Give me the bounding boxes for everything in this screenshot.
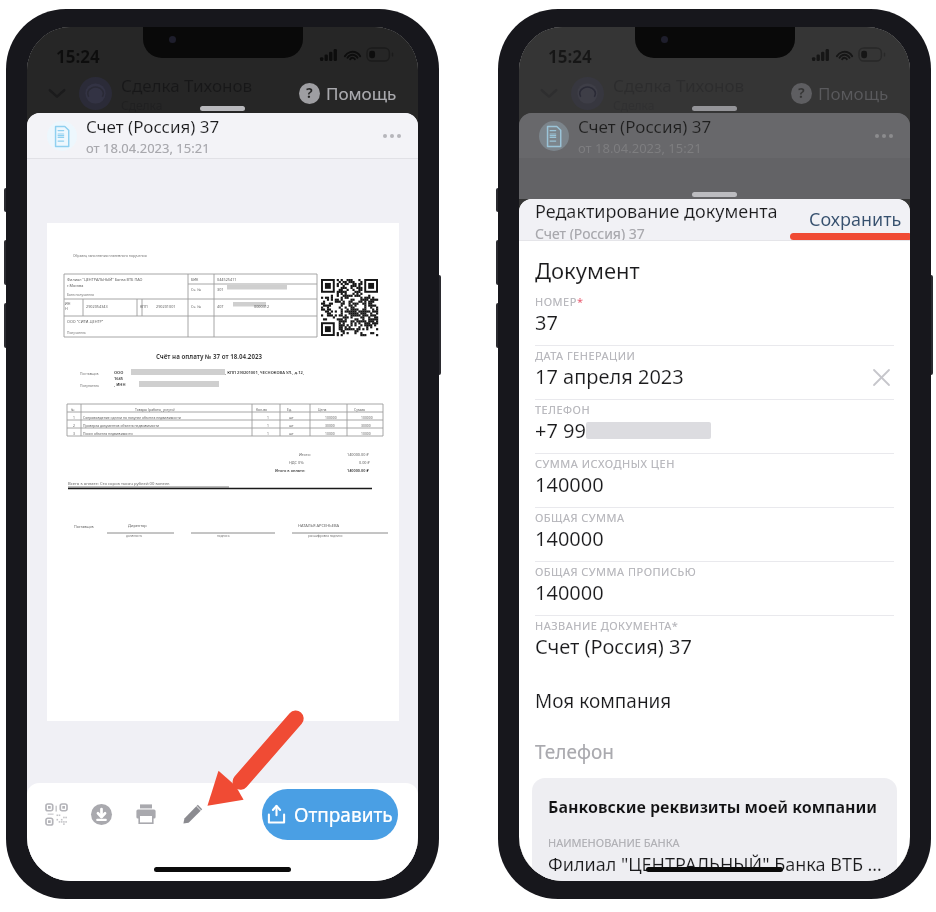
staticText: 37 bbox=[535, 309, 558, 336]
staticText: должность bbox=[126, 534, 143, 538]
button[interactable]: ОБЩАЯ СУММА ПРОПИСЬЮ bbox=[535, 562, 894, 616]
button[interactable]: Сохранить bbox=[799, 201, 910, 238]
staticText: г.Москва bbox=[67, 283, 84, 288]
staticText: , ИНН bbox=[114, 382, 126, 387]
staticText: Образец заполнения платежного поручения bbox=[73, 253, 147, 258]
staticText: Документ bbox=[535, 255, 640, 285]
staticText: КПП bbox=[140, 304, 148, 309]
staticText: 3 bbox=[73, 431, 75, 436]
staticText: Директор bbox=[128, 523, 147, 528]
staticText: Кол-во bbox=[256, 407, 268, 412]
staticText: Всего к оплате: Сто сорок тысяч рублей 0… bbox=[68, 481, 170, 487]
staticText: Проверка документов объекта недвижимости bbox=[83, 423, 160, 428]
staticText: ДАТА ГЕНЕРАЦИИ bbox=[535, 348, 636, 363]
button[interactable]: Download bbox=[84, 797, 118, 831]
staticText: Счет (Россия) 37 bbox=[86, 115, 220, 138]
staticText: 290201001 bbox=[156, 304, 176, 309]
staticText: № bbox=[71, 407, 75, 412]
staticText: ОБЩАЯ СУММА ПРОПИСЬЮ bbox=[535, 564, 697, 579]
button[interactable]: Отправить bbox=[262, 789, 398, 840]
staticText: 2902054343 bbox=[86, 304, 108, 309]
staticText: 140000.00 ₽ bbox=[347, 452, 369, 457]
staticText: 140000.00 ₽ bbox=[347, 468, 369, 473]
staticText: Сопровождение сделки по покупке объекта … bbox=[83, 415, 181, 420]
button[interactable]: More options bbox=[378, 122, 406, 150]
staticText: от 18.04.2023, 15:21 bbox=[578, 139, 702, 157]
staticText: 15:24 bbox=[56, 45, 100, 68]
button[interactable]: ДАТА ГЕНЕРАЦИИ bbox=[535, 346, 894, 400]
staticText: 044525411 bbox=[217, 277, 237, 282]
staticText: Счет (Россия) 37 bbox=[535, 224, 645, 240]
staticText: 10000 bbox=[361, 431, 371, 436]
staticText: 17 апреля 2023 bbox=[535, 363, 684, 390]
staticText: 100000 bbox=[325, 415, 337, 420]
staticText: Поиск объекта недвижимости bbox=[83, 431, 133, 436]
button[interactable]: Clear bbox=[868, 364, 894, 390]
staticText: Редактирование документа bbox=[535, 199, 778, 224]
staticText: СУММА ИСХОДНЫХ ЦЕН bbox=[535, 456, 675, 471]
staticText: 301 bbox=[217, 287, 224, 292]
button[interactable]: Счет (Россия) 37 bbox=[27, 113, 418, 158]
staticText: 140000 bbox=[535, 579, 604, 606]
button[interactable]: Счет (Россия) 37 bbox=[519, 113, 910, 158]
staticText: ОБЩАЯ СУММА bbox=[535, 510, 625, 525]
staticText: Счет (Россия) 37 bbox=[535, 633, 692, 660]
staticText: ТЕЛЕФОН bbox=[535, 402, 591, 417]
staticText: * bbox=[577, 294, 584, 309]
staticText: 1 bbox=[267, 431, 269, 436]
button[interactable]: СУММА ИСХОДНЫХ ЦЕН bbox=[535, 454, 894, 508]
staticText: НАТАЛЬЯ АРСЕНЬЕВА bbox=[298, 523, 340, 528]
staticText: 1 bbox=[267, 415, 269, 420]
staticText: Поставщик bbox=[74, 524, 94, 529]
staticText: ? bbox=[798, 83, 805, 102]
button[interactable]: ? bbox=[788, 79, 892, 108]
staticText: 30000 bbox=[361, 423, 371, 428]
staticText: 140000 bbox=[535, 525, 604, 552]
staticText: Сохранить bbox=[809, 207, 902, 232]
staticText: БИК bbox=[191, 277, 199, 282]
staticText: Помощь bbox=[818, 82, 889, 105]
staticText: шт bbox=[289, 415, 294, 420]
staticText: +7 99 bbox=[535, 417, 586, 444]
button[interactable]: ТЕЛЕФОН bbox=[535, 400, 894, 454]
staticText: 100000 bbox=[361, 415, 373, 420]
staticText: Итого к оплате: bbox=[275, 468, 306, 473]
staticText: 0000312 bbox=[254, 304, 270, 309]
staticText: Ед. bbox=[287, 407, 292, 412]
staticText: ? bbox=[306, 83, 313, 102]
staticText: 2 bbox=[73, 423, 75, 428]
staticText: Поставщик bbox=[80, 371, 99, 376]
staticText: ИН bbox=[65, 301, 71, 306]
button[interactable]: НОМЕР bbox=[535, 292, 894, 346]
staticText: Сч. № bbox=[191, 304, 201, 309]
staticText: шт bbox=[289, 431, 294, 436]
button[interactable]: ? bbox=[296, 79, 400, 108]
button[interactable]: More options bbox=[870, 122, 898, 150]
staticText: 30000 bbox=[325, 423, 335, 428]
staticText: Банковские реквизиты моей компании bbox=[548, 796, 878, 818]
staticText: 10000 bbox=[325, 431, 335, 436]
staticText: НОМЕР bbox=[535, 294, 577, 309]
button[interactable]: Print bbox=[129, 797, 163, 831]
button[interactable]: НАЗВАНИЕ ДОКУМЕНТА* bbox=[535, 616, 894, 670]
button[interactable]: ОБЩАЯ СУММА bbox=[535, 508, 894, 562]
staticText: Цена bbox=[318, 407, 327, 412]
button[interactable]: Edit bbox=[176, 797, 210, 831]
staticText: 407 bbox=[217, 304, 224, 309]
staticText: 1645 bbox=[114, 376, 124, 381]
staticText: ООО bbox=[114, 370, 124, 375]
staticText: Филиал "ЦЕНТРАЛЬНЫЙ" Банка ВТБ ПАО bbox=[67, 277, 143, 282]
button[interactable]: QR code bbox=[39, 797, 73, 831]
staticText: Сделка Тихонов bbox=[121, 74, 253, 97]
staticText: Итого: bbox=[299, 452, 311, 457]
staticText: 1 bbox=[267, 423, 269, 428]
staticText: Товары (работы, услуги) bbox=[135, 407, 175, 412]
staticText: от 18.04.2023, 15:21 bbox=[86, 139, 210, 157]
staticText: Отправить bbox=[294, 802, 393, 828]
staticText: Сумма bbox=[354, 407, 365, 412]
staticText: НДС 0%: bbox=[289, 460, 305, 465]
